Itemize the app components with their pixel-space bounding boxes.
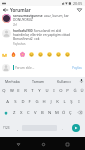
staticText: Yorum ekle...: [15, 66, 35, 70]
button[interactable]: Back: [12, 138, 24, 150]
staticText: V: [34, 110, 37, 116]
button[interactable]: Y: [36, 85, 43, 96]
staticText: S: [14, 99, 17, 105]
staticText: ,: [17, 126, 18, 131]
button[interactable]: E: [15, 85, 22, 96]
staticText: B: [41, 110, 44, 116]
staticText: T: [31, 88, 34, 94]
button[interactable]: Backspace: [74, 107, 85, 118]
button[interactable]: Emoji reaction: [45, 50, 54, 59]
button[interactable]: L: [61, 96, 68, 107]
button[interactable]: B: [39, 107, 46, 118]
button[interactable]: Ğ: [71, 85, 78, 96]
button[interactable]: Ü: [78, 85, 85, 96]
staticText: D: [21, 99, 25, 105]
staticText: O: [59, 88, 63, 94]
staticText: C: [27, 110, 30, 116]
staticText: R: [24, 88, 27, 94]
staticText: H: [42, 99, 46, 105]
staticText: Ü: [80, 88, 84, 94]
button[interactable]: G: [33, 96, 40, 107]
staticText: Y: [38, 88, 41, 94]
staticText: Sonuclandi mi aldi: [33, 29, 62, 33]
button[interactable]: F: [26, 96, 33, 107]
staticText: Ğ: [73, 88, 77, 94]
button[interactable]: Paylas: [71, 65, 83, 71]
button[interactable]: Voice input: [77, 77, 85, 85]
button[interactable]: Ş: [68, 96, 75, 107]
staticText: U: [45, 88, 49, 94]
staticText: hazirdinlar, ellerinle en yaptigim citta…: [13, 33, 70, 37]
staticText: K: [56, 99, 59, 105]
staticText: I: [53, 88, 55, 94]
button[interactable]: Emoji reaction: [9, 50, 18, 59]
button[interactable]: Merhaba: [0, 77, 25, 85]
staticText: DONUYORUZ: [13, 18, 33, 22]
button[interactable]: Q: [0, 85, 8, 96]
button[interactable]: Tamam: [25, 77, 51, 85]
button[interactable]: W: [8, 85, 15, 96]
button[interactable]: K: [54, 96, 61, 107]
button[interactable]: Emoji reaction: [27, 50, 36, 59]
button[interactable]: O: [57, 85, 64, 96]
button[interactable]: Emoji reaction: [0, 50, 9, 59]
staticText: M: [55, 110, 59, 116]
button[interactable]: ,: [13, 122, 21, 134]
button[interactable]: V: [32, 107, 39, 118]
staticText: sonsuzmavigunese: [13, 14, 43, 18]
staticText: Ş: [70, 99, 73, 105]
staticText: J: [50, 99, 52, 105]
button[interactable]: Home: [37, 138, 49, 150]
button[interactable]: Back: [0, 6, 10, 13]
button[interactable]: Recents: [61, 138, 73, 150]
button[interactable]: M: [53, 107, 60, 118]
button[interactable]: A: [3, 96, 11, 107]
staticText: Merhaba: [5, 79, 20, 84]
staticText: ?123: [3, 126, 10, 130]
button[interactable]: H: [40, 96, 47, 107]
staticText: 20:05: [73, 1, 83, 6]
staticText: X: [20, 110, 23, 116]
button[interactable]: T: [29, 85, 36, 96]
button[interactable]: P: [64, 85, 71, 96]
button[interactable]: S: [11, 96, 19, 107]
staticText: Paylas: [72, 66, 82, 70]
button[interactable]: I: [75, 96, 82, 107]
staticText: F: [28, 99, 31, 105]
button[interactable]: Share: [74, 6, 84, 13]
button[interactable]: Kullanıcı: [51, 77, 77, 85]
button[interactable]: R: [22, 85, 29, 96]
button[interactable]: C: [25, 107, 32, 118]
staticText: Kullanıcı: [57, 79, 71, 84]
button[interactable]: Ö: [60, 107, 67, 118]
staticText: P: [66, 88, 69, 94]
staticText: Z: [13, 110, 16, 116]
button[interactable]: U: [43, 85, 50, 96]
staticText: E: [17, 88, 20, 94]
button[interactable]: X: [18, 107, 25, 118]
staticText: haribaful900: [13, 29, 33, 33]
button[interactable]: Emoji reaction: [54, 50, 63, 59]
button[interactable]: Z: [11, 107, 18, 118]
button[interactable]: Ç: [67, 107, 74, 118]
button[interactable]: Shift: [0, 107, 11, 118]
staticText: .: [62, 126, 63, 131]
button[interactable]: Send: [72, 124, 80, 132]
button[interactable]: ?123: [0, 122, 13, 134]
button[interactable]: J: [47, 96, 54, 107]
staticText: N: [48, 110, 52, 116]
button[interactable]: Emoji reaction: [63, 50, 72, 59]
button[interactable]: D: [19, 96, 26, 107]
button[interactable]: Emoji reaction: [36, 50, 45, 59]
staticText: Ç: [69, 110, 72, 116]
button[interactable]: N: [46, 107, 53, 118]
staticText: Yorumlar: [10, 7, 31, 13]
button[interactable]: Emoji reaction: [18, 50, 27, 59]
staticText: Ö: [62, 110, 66, 116]
staticText: Tamam: [32, 79, 45, 84]
staticText: I: [78, 99, 80, 105]
button[interactable]: I: [50, 85, 57, 96]
staticText: A: [6, 99, 9, 105]
